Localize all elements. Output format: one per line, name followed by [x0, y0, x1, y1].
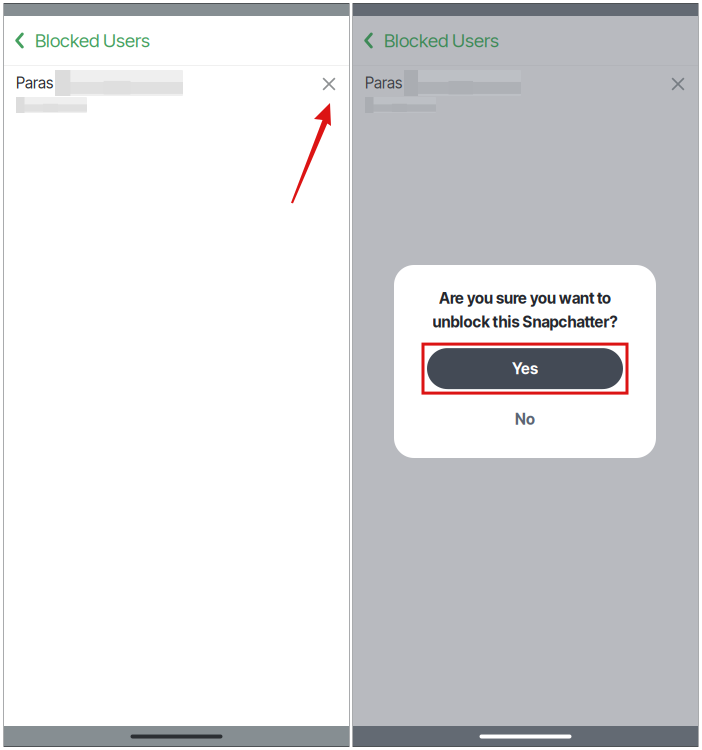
button[interactable]: Unblock user	[661, 67, 695, 101]
staticText: unblock this Snapchatter?	[432, 313, 617, 331]
staticText: Blocked Users	[35, 29, 150, 52]
staticText: Paras	[365, 74, 402, 92]
button[interactable]: Unblock user	[312, 67, 346, 101]
staticText: No	[515, 410, 535, 428]
staticText: Paras	[16, 74, 53, 92]
staticText: Are you sure you want to	[439, 289, 611, 308]
button[interactable]: No	[470, 406, 580, 432]
button[interactable]: Yes	[423, 344, 627, 393]
button[interactable]: Blocked Users	[352, 16, 699, 65]
staticText: Yes	[512, 359, 538, 378]
staticText: Blocked Users	[384, 29, 499, 52]
button[interactable]: Blocked Users	[3, 16, 350, 65]
